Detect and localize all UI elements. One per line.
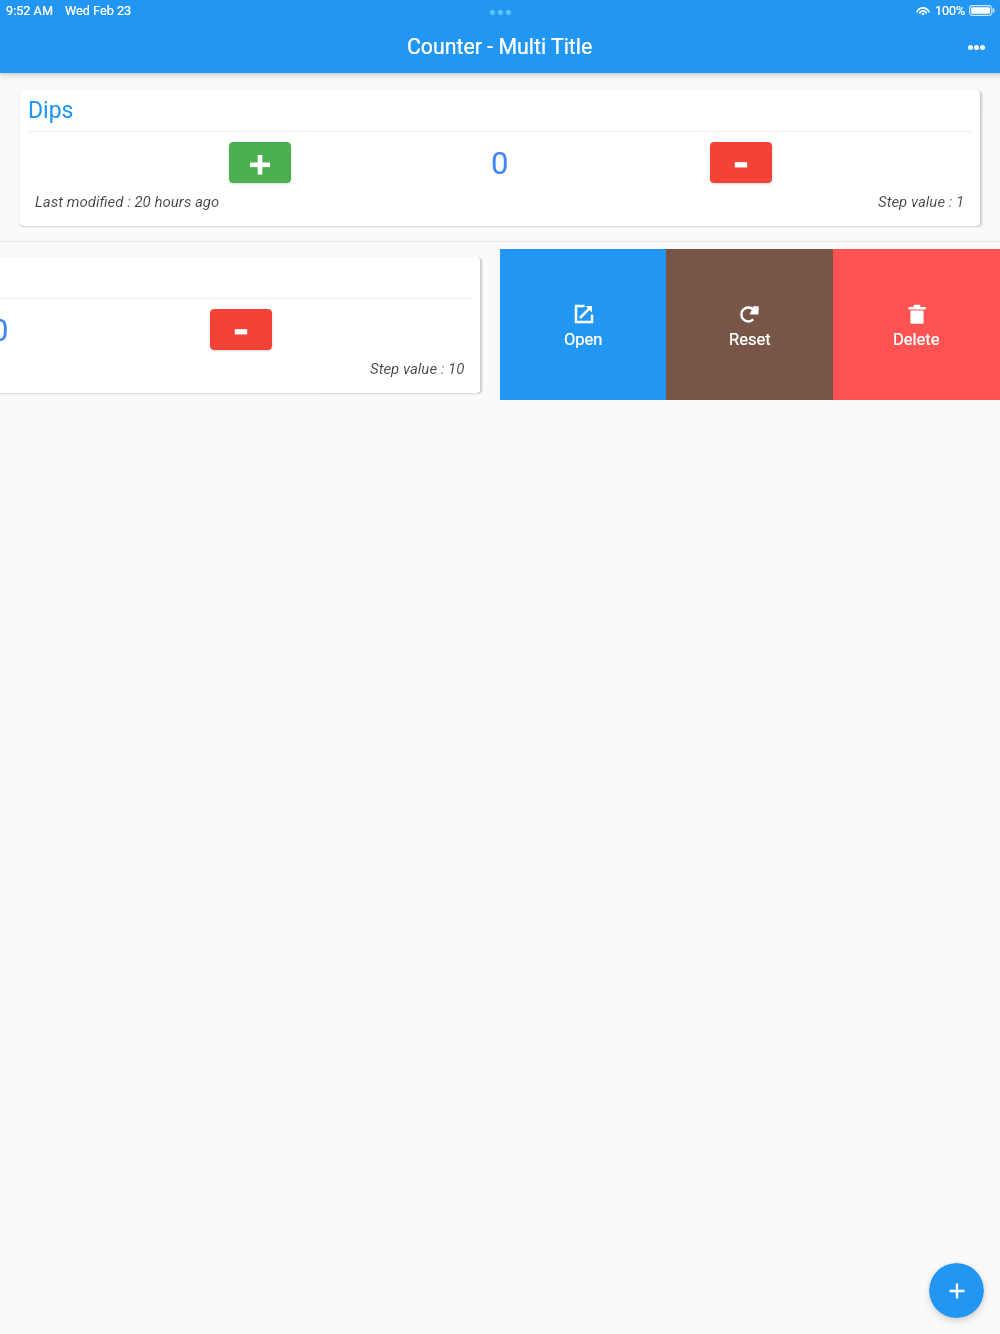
button[interactable]: Reset [666, 249, 833, 400]
button[interactable]: Open [500, 249, 666, 400]
button[interactable]: Decrement [710, 142, 772, 183]
button[interactable]: Delete [833, 249, 1000, 400]
staticText: Last modified : 20 hours ago [35, 193, 220, 211]
staticText: Open [564, 330, 603, 349]
button[interactable]: More options [952, 23, 1000, 71]
staticText: Delete [893, 330, 940, 349]
button[interactable]: Add counter [929, 1263, 984, 1318]
staticText: 9:52 AM [6, 3, 53, 18]
button[interactable]: Dips [20, 90, 980, 226]
staticText: Dips [28, 97, 74, 124]
staticText: Step value : 10 [370, 360, 465, 378]
button[interactable]: Decrement [210, 309, 272, 350]
staticText: Reset [729, 330, 771, 349]
staticText: 100% [935, 3, 966, 18]
staticText: Step value : 1 [878, 193, 965, 211]
button[interactable]: Squats [0, 257, 480, 393]
staticText: 0 [491, 145, 509, 181]
staticText: 0 [0, 312, 9, 348]
staticText: Wed Feb 23 [65, 3, 132, 18]
staticText: Counter - Multi Title [407, 34, 593, 59]
button[interactable]: Increment [229, 142, 291, 183]
